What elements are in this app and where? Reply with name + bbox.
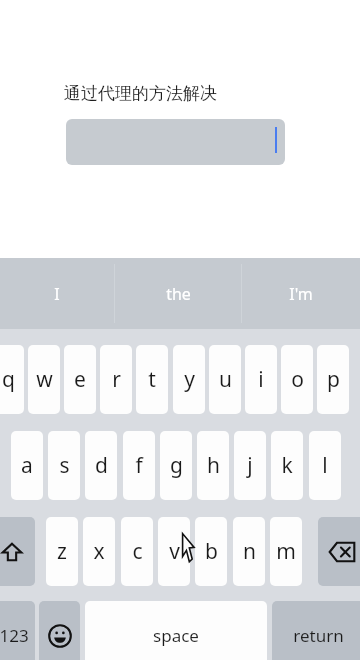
staticText: l <box>322 451 328 480</box>
staticText: w <box>36 365 53 394</box>
staticText: I'm <box>289 283 313 305</box>
staticText: I <box>54 283 60 305</box>
button[interactable]: Emoji <box>39 601 80 660</box>
button[interactable] <box>66 119 285 165</box>
button[interactable]: r <box>100 345 132 414</box>
button[interactable]: the <box>115 258 241 329</box>
button[interactable]: e <box>64 345 96 414</box>
staticText: the <box>166 283 191 305</box>
button[interactable]: k <box>271 431 303 500</box>
button[interactable]: I'm <box>242 258 360 329</box>
staticText: e <box>74 365 86 394</box>
staticText: i <box>258 365 264 394</box>
button[interactable]: t <box>136 345 168 414</box>
staticText: c <box>132 537 143 566</box>
button[interactable]: u <box>209 345 241 414</box>
staticText: space <box>153 624 199 647</box>
staticText: t <box>148 365 156 394</box>
button[interactable]: p <box>317 345 349 414</box>
button[interactable]: v <box>158 517 190 586</box>
staticText: k <box>281 451 293 480</box>
button[interactable]: z <box>46 517 78 586</box>
staticText: r <box>112 365 121 394</box>
button[interactable]: Backspace <box>318 517 360 586</box>
staticText: p <box>327 365 340 394</box>
button[interactable]: a <box>11 431 43 500</box>
staticText: return <box>293 624 344 647</box>
button[interactable]: ?123 <box>0 601 35 660</box>
button[interactable]: m <box>270 517 302 586</box>
staticText: x <box>93 537 105 566</box>
staticText: b <box>205 537 218 566</box>
button[interactable]: y <box>173 345 205 414</box>
staticText: j <box>247 451 253 480</box>
staticText: v <box>169 537 180 566</box>
staticText: ?123 <box>0 624 29 647</box>
button[interactable]: j <box>234 431 266 500</box>
button[interactable]: space <box>85 601 267 660</box>
staticText: q <box>2 365 15 394</box>
button[interactable]: f <box>123 431 155 500</box>
button[interactable]: n <box>233 517 265 586</box>
button[interactable]: return <box>272 601 360 660</box>
staticText: f <box>135 451 143 480</box>
button[interactable]: s <box>48 431 80 500</box>
button[interactable]: q <box>0 345 24 414</box>
staticText: 通过代理的方法解决 <box>64 83 217 104</box>
staticText: a <box>21 451 33 480</box>
button[interactable]: o <box>281 345 313 414</box>
button[interactable]: g <box>160 431 192 500</box>
button[interactable]: I <box>0 258 114 329</box>
staticText: g <box>170 451 183 480</box>
staticText: n <box>243 537 256 566</box>
button[interactable]: b <box>195 517 227 586</box>
staticText: h <box>207 451 220 480</box>
button[interactable]: l <box>309 431 341 500</box>
staticText: u <box>219 365 232 394</box>
button[interactable]: x <box>83 517 115 586</box>
button[interactable]: Shift <box>0 517 35 586</box>
button[interactable]: i <box>245 345 277 414</box>
button[interactable]: w <box>28 345 60 414</box>
staticText: m <box>276 537 296 566</box>
staticText: s <box>59 451 70 480</box>
staticText: d <box>95 451 108 480</box>
staticText: z <box>57 537 67 566</box>
button[interactable]: h <box>197 431 229 500</box>
button[interactable]: d <box>85 431 117 500</box>
button[interactable]: c <box>121 517 153 586</box>
staticText: o <box>291 365 304 394</box>
staticText: y <box>184 365 195 394</box>
